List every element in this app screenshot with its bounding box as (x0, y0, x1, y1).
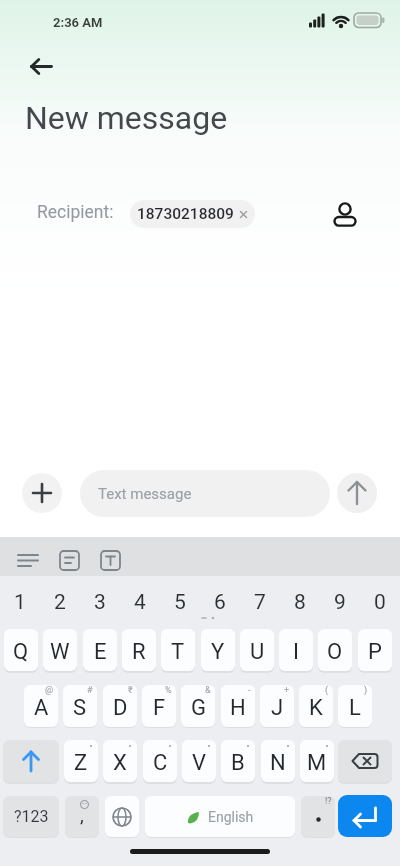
staticText: C (153, 750, 168, 776)
staticText: T (171, 639, 185, 665)
staticText: G (191, 695, 206, 721)
button[interactable] (55, 543, 85, 575)
button[interactable]: L (338, 685, 372, 727)
button[interactable]: O (318, 629, 352, 671)
staticText: I (293, 639, 299, 665)
staticText: @ (45, 685, 54, 696)
staticText: ?123 (14, 807, 49, 826)
staticText: O (327, 639, 343, 665)
button[interactable]: 7 (240, 585, 280, 619)
button[interactable] (338, 795, 392, 837)
button[interactable]: English (145, 796, 295, 837)
button[interactable] (105, 796, 139, 837)
button[interactable] (3, 740, 59, 782)
staticText: L (349, 695, 361, 721)
button[interactable]: N (261, 740, 295, 782)
staticText: W (50, 639, 70, 665)
button[interactable]: M (300, 740, 334, 782)
button[interactable]: 8 (280, 585, 320, 619)
staticText: D (113, 695, 128, 721)
staticText: F (153, 695, 166, 721)
staticText: - (248, 685, 251, 696)
button[interactable]: 5 (160, 585, 200, 619)
staticText: R (132, 639, 146, 665)
button[interactable]: 2 (40, 585, 80, 619)
staticText: 8 (294, 590, 306, 615)
staticText: ( (325, 685, 329, 696)
button[interactable]: K (299, 685, 333, 727)
staticText: # (87, 685, 93, 696)
staticText: X (113, 750, 127, 776)
staticText: N (270, 750, 286, 776)
staticText: V (192, 750, 207, 776)
staticText: K (309, 695, 323, 721)
staticText: A (34, 695, 49, 721)
staticText: S (73, 695, 87, 721)
button[interactable]: B (221, 740, 255, 782)
button[interactable] (96, 543, 126, 575)
staticText: J (271, 695, 284, 721)
button[interactable]: X (103, 740, 137, 782)
button[interactable]: P (358, 629, 392, 671)
button[interactable] (12, 543, 46, 571)
button[interactable]: 1 (0, 585, 40, 619)
button[interactable]: 9 (320, 585, 360, 619)
button[interactable]: H (221, 685, 255, 727)
button[interactable]: E (83, 629, 117, 671)
button[interactable]: 4 (120, 585, 160, 619)
button[interactable]: 0 (360, 585, 400, 619)
button[interactable]: A (24, 685, 58, 727)
button[interactable]: 6 (200, 585, 240, 619)
staticText: 0 (374, 590, 386, 615)
staticText: 3 (94, 590, 106, 615)
staticText: Q (13, 639, 29, 665)
button[interactable] (22, 473, 62, 513)
button[interactable] (16, 46, 64, 86)
button[interactable]: T (161, 629, 195, 671)
button[interactable]: Y (201, 629, 235, 671)
button[interactable]: V (182, 740, 216, 782)
button[interactable]: 3 (80, 585, 120, 619)
staticText: 2:36 AM (53, 15, 103, 30)
button[interactable]: C (143, 740, 177, 782)
staticText: Text message (98, 485, 192, 503)
staticText: ₹ (128, 685, 133, 696)
button[interactable]: U (240, 629, 274, 671)
staticText: 6 (214, 590, 226, 615)
button[interactable]: 18730218809 (130, 200, 255, 228)
button[interactable]: Text message (80, 470, 330, 517)
staticText: Z (74, 750, 88, 776)
staticText: H (230, 695, 246, 721)
button[interactable]: J (260, 685, 294, 727)
button[interactable] (338, 740, 392, 782)
button[interactable]: W (43, 629, 77, 671)
button[interactable]: F (142, 685, 176, 727)
button[interactable] (328, 196, 362, 236)
staticText: 7 (254, 590, 266, 615)
staticText: Recipient: (37, 202, 114, 223)
staticText: U (250, 639, 265, 665)
staticText: 1 (14, 590, 26, 615)
staticText: ) (364, 685, 368, 696)
staticText: New message (25, 99, 228, 137)
button[interactable] (337, 473, 377, 513)
button[interactable]: G (181, 685, 215, 727)
staticText: B (231, 750, 245, 776)
button[interactable]: Q (4, 629, 38, 671)
button[interactable]: !? (301, 796, 335, 837)
staticText: + (284, 685, 290, 696)
button[interactable]: ?123 (3, 796, 59, 837)
staticText: & (205, 685, 211, 696)
button[interactable]: R (122, 629, 156, 671)
button[interactable]: D (103, 685, 137, 727)
button[interactable]: , (65, 796, 99, 837)
staticText: Y (211, 639, 225, 665)
button[interactable]: Z (64, 740, 98, 782)
staticText: 4 (134, 590, 146, 615)
staticText: % (165, 685, 172, 696)
staticText: M (307, 750, 327, 776)
staticText: 9 (334, 590, 346, 615)
button[interactable]: S (63, 685, 97, 727)
button[interactable]: I (279, 629, 313, 671)
staticText: !? (325, 796, 332, 807)
